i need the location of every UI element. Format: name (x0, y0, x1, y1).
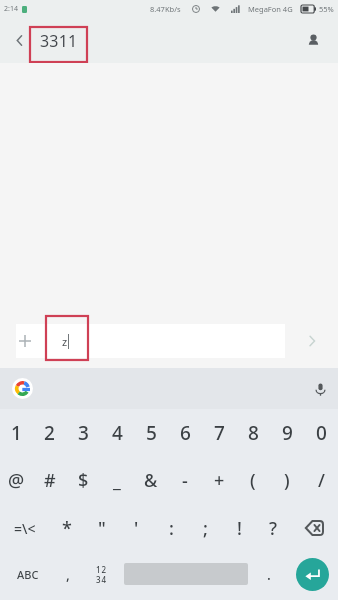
button[interactable]: Send (285, 324, 338, 358)
staticText: 8.47Kb/s (150, 4, 181, 14)
staticText: MegaFon 4G (248, 4, 293, 14)
staticText: 3311 (40, 30, 78, 52)
staticText: - (182, 468, 188, 493)
staticText: 4 (112, 420, 123, 446)
button[interactable]: Symbols (85, 550, 119, 598)
button[interactable]: / (304, 456, 338, 504)
staticText: . (267, 565, 271, 584)
staticText: 5 (146, 420, 157, 446)
button[interactable]: Enter (286, 550, 338, 598)
staticText: * (62, 516, 72, 541)
staticText: 7 (214, 420, 225, 446)
button[interactable]: Contact details (292, 18, 334, 63)
button[interactable]: Backspace (290, 504, 338, 552)
button[interactable]: ! (222, 504, 256, 552)
staticText: @ (8, 468, 25, 493)
button[interactable]: - (168, 456, 202, 504)
button[interactable]: 3311 (40, 18, 78, 63)
staticText: # (44, 468, 56, 493)
staticText: 3 (78, 420, 89, 446)
staticText: + (214, 468, 225, 493)
staticText: : (169, 516, 174, 541)
button[interactable]: @ (0, 456, 33, 504)
staticText: 12 (96, 564, 108, 575)
staticText: ? (269, 516, 278, 541)
button[interactable]: 9 (270, 409, 304, 456)
button[interactable]: ? (256, 504, 290, 552)
staticText: 1 (11, 420, 22, 446)
staticText: _ (113, 468, 121, 493)
button[interactable]: " (84, 504, 119, 552)
button[interactable]: Google search (12, 378, 33, 399)
staticText: , (66, 565, 70, 584)
button[interactable]: , (51, 550, 85, 598)
staticText: ; (203, 516, 208, 541)
button[interactable]: ' (119, 504, 154, 552)
button[interactable]: 5 (134, 409, 168, 456)
staticText: 0 (316, 420, 327, 446)
staticText: ABC (17, 567, 39, 582)
button[interactable]: . (252, 550, 286, 598)
button[interactable]: & (134, 456, 168, 504)
button[interactable]: * (49, 504, 84, 552)
staticText: ) (284, 468, 290, 493)
staticText: ' (134, 516, 139, 541)
staticText: " (98, 516, 106, 541)
button[interactable]: $ (66, 456, 100, 504)
button[interactable]: 6 (168, 409, 202, 456)
button[interactable]: ABC (4, 550, 51, 598)
button[interactable]: ( (236, 456, 270, 504)
button[interactable]: : (154, 504, 188, 552)
button[interactable]: 1 (0, 409, 33, 456)
button[interactable]: =\< (0, 504, 49, 552)
staticText: 6 (180, 420, 191, 446)
staticText: / (318, 468, 325, 493)
button[interactable]: ) (270, 456, 304, 504)
staticText: 55% (319, 4, 334, 14)
button[interactable]: ; (188, 504, 222, 552)
button[interactable]: 4 (100, 409, 134, 456)
button[interactable]: # (33, 456, 66, 504)
staticText: $ (78, 468, 89, 493)
button[interactable]: Add attachment (16, 324, 33, 358)
staticText: 9 (282, 420, 293, 446)
staticText: 8 (248, 420, 259, 446)
button[interactable]: Back (0, 18, 38, 63)
button[interactable]: 0 (304, 409, 338, 456)
button[interactable]: 2 (33, 409, 66, 456)
staticText: z (62, 334, 68, 349)
staticText: 2 (44, 420, 55, 446)
staticText: 2:14 (4, 4, 18, 14)
staticText: =\< (14, 519, 36, 538)
button[interactable]: + (202, 456, 236, 504)
staticText: & (144, 468, 158, 493)
button[interactable]: Voice input (308, 377, 332, 401)
staticText: ! (237, 516, 242, 541)
button[interactable]: 7 (202, 409, 236, 456)
button[interactable]: 8 (236, 409, 270, 456)
button[interactable]: _ (100, 456, 134, 504)
button[interactable]: 3 (66, 409, 100, 456)
staticText: ( (250, 468, 256, 493)
staticText: 34 (96, 574, 108, 585)
button[interactable]: z (33, 324, 285, 358)
button[interactable]: Space (119, 550, 252, 598)
